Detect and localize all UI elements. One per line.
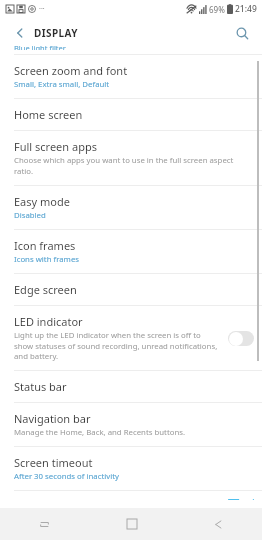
staticText: Screen timeout: [14, 455, 93, 470]
button[interactable]: Edge screen: [0, 274, 262, 305]
staticText: Manage the Home, Back, and Recents butto…: [14, 427, 186, 438]
button[interactable]: Screen timeout: [0, 447, 262, 490]
button[interactable]: Back: [8, 21, 32, 45]
staticText: Icon frames: [14, 238, 76, 253]
staticText: Screen zoom and font: [14, 63, 128, 78]
staticText: Blue light filter: [14, 43, 66, 50]
button[interactable]: Toggle off: [228, 331, 254, 346]
staticText: After 30 seconds of inactivity: [14, 471, 119, 482]
button[interactable]: Easy mode: [0, 186, 262, 229]
staticText: 69%: [209, 4, 225, 15]
button[interactable]: Keep screen turned off: [0, 491, 262, 508]
button[interactable]: Screen zoom and font: [0, 55, 262, 98]
button[interactable]: Home screen: [0, 99, 262, 130]
button[interactable]: Search: [230, 21, 254, 45]
button[interactable]: Navigation bar: [0, 403, 262, 446]
button[interactable]: LED indicator: [0, 306, 262, 370]
staticText: Navigation bar: [14, 411, 91, 426]
button[interactable]: Icon frames: [0, 230, 262, 273]
staticText: Light up the LED indicator when the scre…: [14, 330, 222, 362]
staticText: Disabled: [14, 210, 46, 221]
button[interactable]: Home: [88, 508, 175, 540]
button[interactable]: Back: [175, 508, 262, 540]
staticText: Easy mode: [14, 194, 70, 209]
staticText: Icons with frames: [14, 254, 80, 265]
staticText: Status bar: [14, 379, 67, 394]
button[interactable]: Toggle on: [228, 499, 254, 500]
staticText: DISPLAY: [34, 26, 78, 40]
staticText: Home screen: [14, 107, 83, 122]
staticText: LED indicator: [14, 314, 83, 329]
staticText: Edge screen: [14, 282, 77, 297]
staticText: Small, Extra small, Default: [14, 79, 110, 90]
staticText: 21:49: [235, 3, 257, 15]
button[interactable]: Full screen apps: [0, 131, 262, 185]
staticText: Choose which apps you want to use in the…: [14, 155, 254, 177]
button[interactable]: Status bar: [0, 371, 262, 402]
button[interactable]: Recents: [0, 508, 88, 540]
staticText: Full screen apps: [14, 139, 97, 154]
staticText: ...: [39, 2, 45, 12]
